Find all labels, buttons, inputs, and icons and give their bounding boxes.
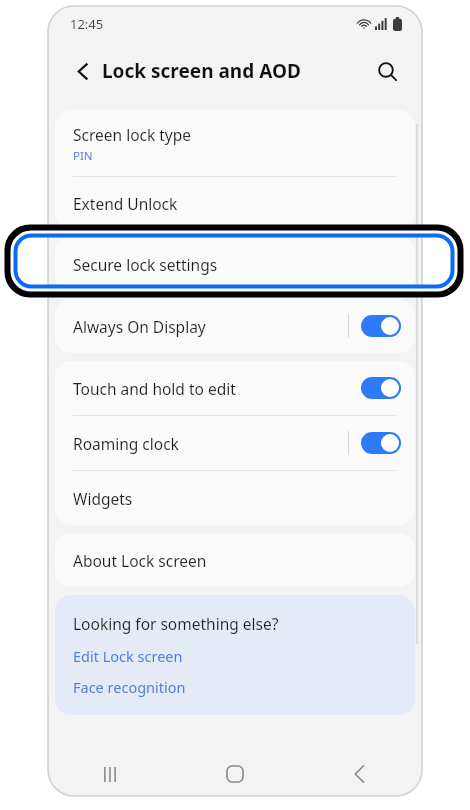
button[interactable]: Toggle on	[361, 315, 401, 337]
staticText: Touch and hold to edit	[73, 378, 361, 399]
button[interactable]: Toggle on	[361, 377, 401, 399]
staticText: Face recognition	[73, 677, 186, 697]
button[interactable]: Search	[368, 52, 406, 90]
button[interactable]: About Lock screen	[55, 533, 415, 587]
button[interactable]: Always On Display	[55, 299, 415, 353]
button[interactable]: Recents	[48, 752, 172, 796]
button[interactable]: Back	[297, 752, 422, 796]
button[interactable]: Screen lock type	[55, 110, 415, 176]
button[interactable]: Face recognition	[73, 677, 186, 697]
staticText: About Lock screen	[73, 550, 207, 571]
staticText: Lock screen and AOD	[102, 58, 301, 84]
button[interactable]: Extend Unlock	[55, 177, 415, 229]
staticText: Widgets	[73, 488, 133, 509]
button[interactable]: Touch and hold to edit	[55, 361, 415, 415]
staticText: Secure lock settings	[73, 254, 218, 275]
staticText: Extend Unlock	[73, 193, 178, 214]
staticText: Always On Display	[73, 316, 348, 337]
button[interactable]: Widgets	[55, 471, 415, 525]
staticText: PIN	[73, 148, 93, 164]
staticText: Screen lock type	[73, 124, 192, 145]
button[interactable]: Toggle on	[361, 432, 401, 454]
staticText: 12:45	[70, 15, 104, 33]
button[interactable]: Secure lock settings	[55, 237, 415, 291]
staticText: Edit Lock screen	[73, 646, 183, 666]
button[interactable]: Roaming clock	[55, 416, 415, 470]
button[interactable]: Home	[172, 752, 297, 796]
staticText: Roaming clock	[73, 433, 348, 454]
button[interactable]: Back	[64, 52, 102, 90]
button[interactable]: Edit Lock screen	[73, 646, 183, 666]
staticText: Looking for something else?	[73, 613, 279, 634]
